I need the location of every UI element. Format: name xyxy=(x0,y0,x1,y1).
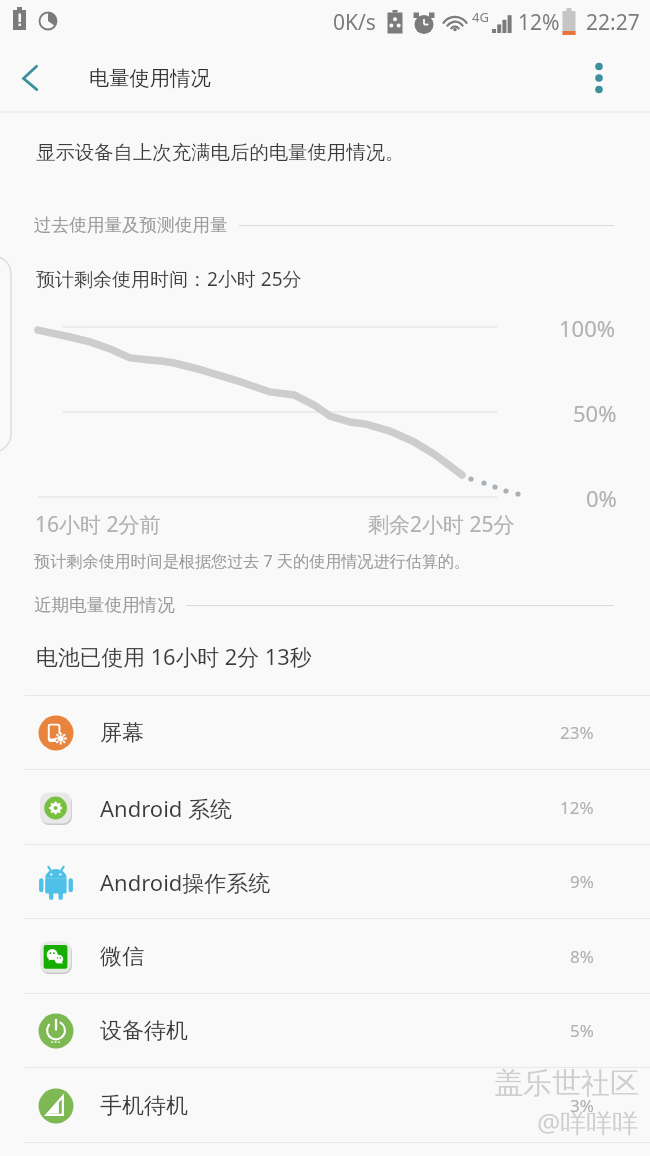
button[interactable]: 设备待机 xyxy=(0,993,650,1068)
button[interactable]: 微信 xyxy=(0,919,650,994)
staticText: Android操作系统 xyxy=(100,867,271,897)
staticText: 16小时 2分前 xyxy=(35,510,161,539)
staticText: 电量使用情况 xyxy=(89,65,211,91)
button[interactable]: Android 系统 xyxy=(0,770,650,845)
staticText: 剩余2小时 25分 xyxy=(368,510,515,539)
staticText: 12% xyxy=(560,796,594,819)
staticText: 22:27 xyxy=(586,8,640,37)
staticText: 近期电量使用情况 xyxy=(34,594,175,616)
staticText: Android 系统 xyxy=(100,793,233,823)
staticText: 0% xyxy=(586,483,617,513)
staticText: 电池已使用 16小时 2分 13秒 xyxy=(36,642,312,672)
staticText: 12% xyxy=(518,8,560,37)
staticText: @咩咩咩 xyxy=(537,1104,639,1140)
staticText: 屏幕 xyxy=(100,719,144,747)
button[interactable]: 屏幕 xyxy=(0,695,650,770)
button[interactable]: More options xyxy=(566,45,632,111)
button[interactable]: 手机待机 xyxy=(0,1068,650,1143)
staticText: 设备待机 xyxy=(100,1017,188,1045)
staticText: 100% xyxy=(559,313,616,343)
staticText: 5% xyxy=(570,1019,594,1042)
staticText: 盖乐世社区 xyxy=(494,1065,639,1102)
button[interactable]: Back xyxy=(0,44,60,111)
staticText: 0K/s xyxy=(333,8,376,37)
staticText: 23% xyxy=(560,721,594,744)
staticText: 显示设备自上次充满电后的电量使用情况。 xyxy=(36,140,405,164)
staticText: 3% xyxy=(570,1094,594,1117)
button[interactable]: Android操作系统 xyxy=(0,844,650,919)
staticText: 9% xyxy=(570,870,594,893)
staticText: 手机待机 xyxy=(100,1092,188,1120)
staticText: 8% xyxy=(570,945,594,968)
staticText: 50% xyxy=(573,398,617,428)
staticText: 过去使用量及预测使用量 xyxy=(34,214,228,236)
staticText: 4G xyxy=(472,8,489,26)
staticText: 微信 xyxy=(100,943,144,971)
staticText: 预计剩余使用时间：2小时 25分 xyxy=(36,266,302,292)
staticText: 预计剩余使用时间是根据您过去 7 天的使用情况进行估算的。 xyxy=(34,550,471,572)
